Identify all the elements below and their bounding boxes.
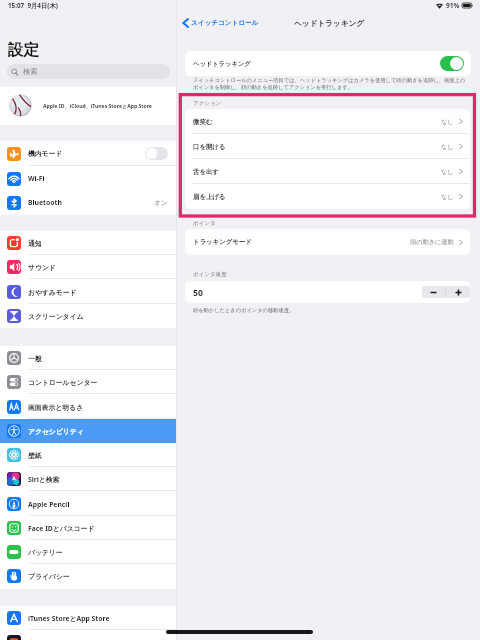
staticText: 口を開ける [193,143,441,151]
staticText: スイッチコントロール [191,19,259,27]
button[interactable]: 一般 [0,346,176,370]
staticText: アクション [193,100,222,107]
button[interactable]: トラッキングモード [185,229,470,255]
button[interactable]: Apple Pencil [0,492,176,516]
staticText: バッテリー [28,548,168,557]
staticText: おやすみモード [28,288,168,297]
staticText: スイッチコントロールのメニュー項目では、ヘッドトラッキングはカメラを使用して頭の… [193,77,466,90]
button[interactable]: 口を開ける [185,134,470,159]
button[interactable]: Wi-Fi [0,166,176,191]
staticText: 頭を動かしたときのポインタの移動速度。 [193,307,295,314]
staticText: 50 [193,287,203,299]
staticText: 検索 [23,67,38,76]
staticText: アクセシビリティ [28,427,168,436]
staticText: Apple Pencil [28,500,168,509]
button[interactable]: アクセシビリティ [0,419,176,443]
button[interactable]: スイッチコントロール [182,17,259,29]
button[interactable]: コントロールセンター [0,370,176,394]
button[interactable]: ウォレットとApple Pay [0,630,176,640]
staticText: なし [441,193,454,201]
staticText: Siriと検索 [28,475,168,484]
staticText: なし [441,143,454,151]
staticText: 91% [446,1,460,10]
staticText: Apple ID、iCloud、iTunes StoreとApp Store [43,103,152,110]
staticText: 画面表示と明るさ [28,403,168,412]
button[interactable]: サウンド [0,255,176,279]
button[interactable]: 舌を出す [185,159,470,184]
staticText: プライバシー [28,572,168,581]
button[interactable]: Airplane mode toggle [145,147,168,160]
button[interactable]: ヘッドトラッキング [185,51,471,76]
button[interactable]: 眉を上げる [185,184,470,209]
staticText: Wi-Fi [28,174,168,183]
button[interactable]: Face IDとパスコード [0,516,176,540]
staticText: 微笑む [193,118,441,126]
button[interactable]: スクリーンタイム [0,304,176,328]
staticText: 頭の動きに連動 [410,238,454,246]
staticText: サウンド [28,263,168,272]
staticText: 通知 [28,239,168,248]
button[interactable]: 微笑む [185,109,470,134]
button[interactable]: Increase [446,286,470,298]
button[interactable]: 壁紙 [0,443,176,467]
staticText: なし [441,168,454,176]
button[interactable]: 検索 [7,64,170,79]
staticText: 眉を上げる [193,193,441,201]
button[interactable]: Bluetooth [0,190,176,215]
staticText: iTunes StoreとApp Store [28,614,168,623]
button[interactable]: プライバシー [0,564,176,588]
staticText: スクリーンタイム [28,312,168,321]
staticText: オン [154,199,168,207]
staticText: 機内モード [28,149,145,158]
staticText: 設定 [8,40,40,60]
button[interactable]: Head tracking toggle [440,56,464,71]
button[interactable]: iTunes StoreとApp Store [0,606,176,630]
staticText: 壁紙 [28,451,168,460]
button[interactable]: Apple ID、iCloud、iTunes StoreとApp Store [0,87,176,125]
button[interactable]: 通知 [0,231,176,255]
staticText: ポインタ速度 [193,271,227,278]
button[interactable]: 画面表示と明るさ [0,395,176,419]
staticText: ヘッドトラッキング [294,19,364,29]
staticText: 舌を出す [193,168,441,176]
staticText: Bluetooth [28,198,154,207]
staticText: なし [441,118,454,126]
staticText: ポインタ [193,220,216,227]
staticText: 一般 [28,354,168,363]
staticText: 15:07 9月4日(木) [8,1,58,10]
button[interactable]: バッテリー [0,540,176,564]
button[interactable]: おやすみモード [0,280,176,304]
staticText: Face IDとパスコード [28,524,168,533]
staticText: コントロールセンター [28,378,168,387]
staticText: ヘッドトラッキング [193,60,251,68]
button[interactable]: Siriと検索 [0,467,176,491]
staticText: トラッキングモード [193,238,410,246]
button[interactable]: Decrease [422,286,445,298]
button[interactable]: 機内モード [0,141,176,166]
